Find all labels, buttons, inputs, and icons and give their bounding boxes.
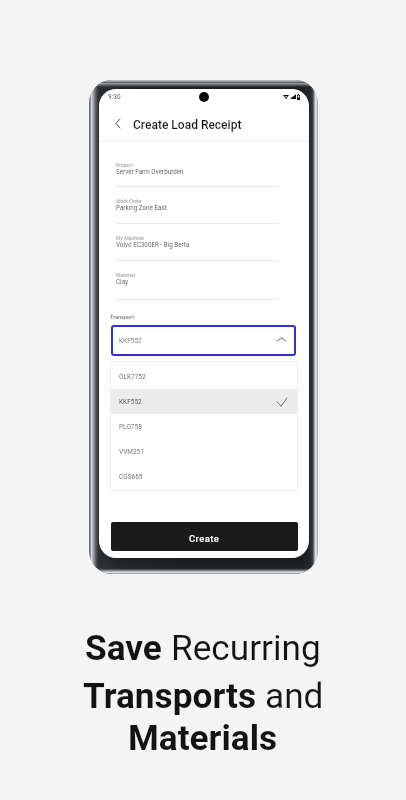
staticText: Parking Zone East <box>116 204 167 211</box>
button[interactable]: My Machine <box>99 234 309 261</box>
staticText: Recurring <box>171 627 321 668</box>
staticText: Transports <box>83 675 265 716</box>
button[interactable]: Create <box>111 522 298 551</box>
staticText: Material <box>116 272 135 278</box>
staticText: My Machine <box>116 235 145 241</box>
button[interactable]: VVM251 <box>110 439 298 464</box>
staticText: Work Order <box>116 198 142 204</box>
staticText: CGS665 <box>119 473 143 481</box>
staticText: and <box>265 675 324 716</box>
button[interactable]: Work Order <box>99 197 309 224</box>
staticText: Save <box>85 627 171 668</box>
button[interactable]: OLK7752 <box>110 364 298 389</box>
staticText: Create Load Receipt <box>133 118 242 132</box>
other: Collapse <box>277 338 286 341</box>
staticText: Volvo EC300ER - Big Berta <box>116 241 190 248</box>
staticText: Clay <box>116 278 128 285</box>
staticText: PLO758 <box>119 423 142 431</box>
staticText: Materials <box>128 717 278 758</box>
button[interactable]: Project <box>99 161 309 187</box>
button[interactable]: Back <box>110 110 126 137</box>
button[interactable]: KKF552 <box>110 389 298 414</box>
staticText: KKF552 <box>119 398 142 406</box>
staticText: OLK7752 <box>119 373 146 381</box>
staticText: Create <box>189 533 220 544</box>
button[interactable]: CGS665 <box>110 464 298 489</box>
button[interactable]: Material <box>99 271 309 300</box>
staticText: 9:30 <box>108 93 121 101</box>
staticText: Project <box>116 162 133 168</box>
staticText: Server Farm Overburden <box>116 168 184 175</box>
button[interactable]: KKF552 <box>111 325 296 356</box>
button[interactable]: PLO758 <box>110 414 298 439</box>
staticText: KKF552 <box>119 337 142 345</box>
staticText: Transport <box>110 314 135 321</box>
staticText: VVM251 <box>119 448 144 456</box>
